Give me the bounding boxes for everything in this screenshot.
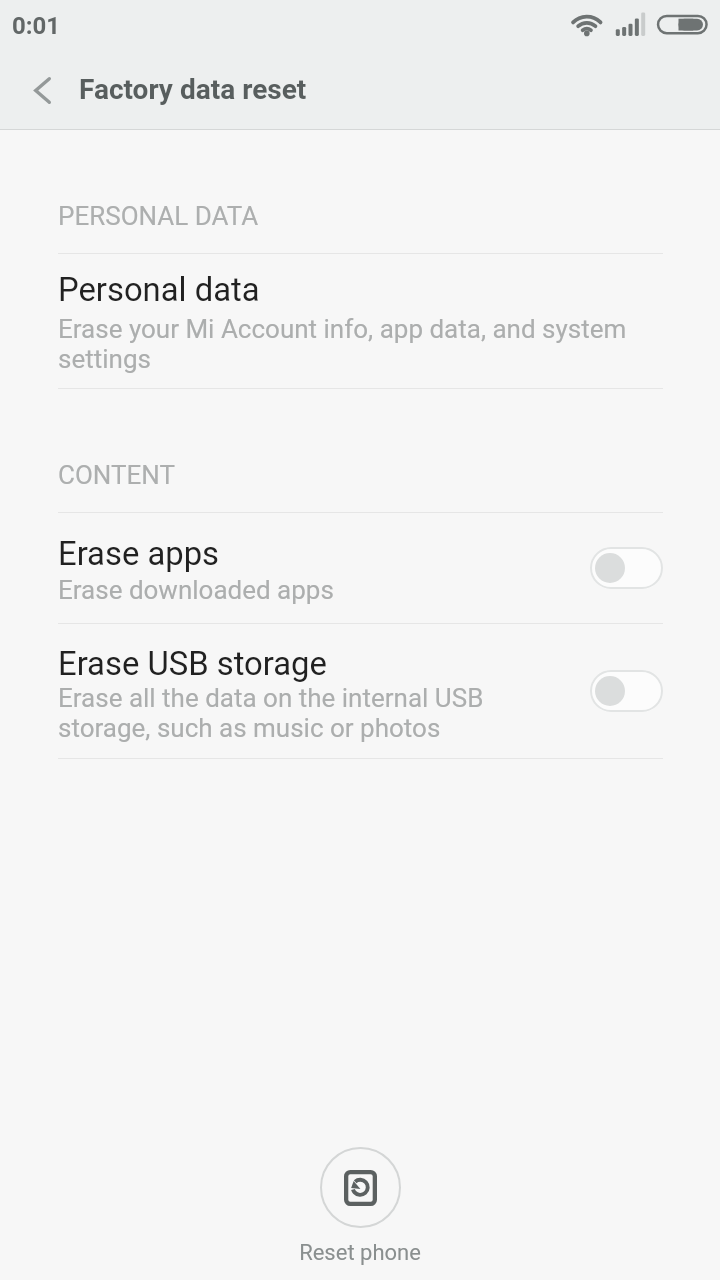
button[interactable]: Toggle	[590, 670, 663, 712]
button[interactable]: Back	[0, 56, 78, 129]
button[interactable]: Reset phone	[275, 1141, 445, 1272]
button[interactable]: Erase USB storage	[0, 624, 720, 758]
button[interactable]: Personal data	[0, 254, 720, 387]
staticText: CONTENT	[58, 460, 175, 490]
button[interactable]: Toggle	[590, 547, 663, 589]
staticText: Erase downloaded apps	[58, 575, 558, 605]
staticText: Erase all the data on the internal USB s…	[58, 683, 528, 743]
staticText: 0:01	[12, 12, 61, 40]
staticText: Erase your Mi Account info, app data, an…	[58, 314, 668, 374]
staticText: PERSONAL DATA	[58, 201, 259, 231]
staticText: Erase USB storage	[58, 645, 327, 683]
staticText: Personal data	[58, 271, 260, 309]
staticText: Erase apps	[58, 535, 220, 573]
button[interactable]: Erase apps	[0, 513, 720, 623]
staticText: Factory data reset	[79, 73, 307, 106]
staticText: Reset phone	[299, 1240, 421, 1266]
